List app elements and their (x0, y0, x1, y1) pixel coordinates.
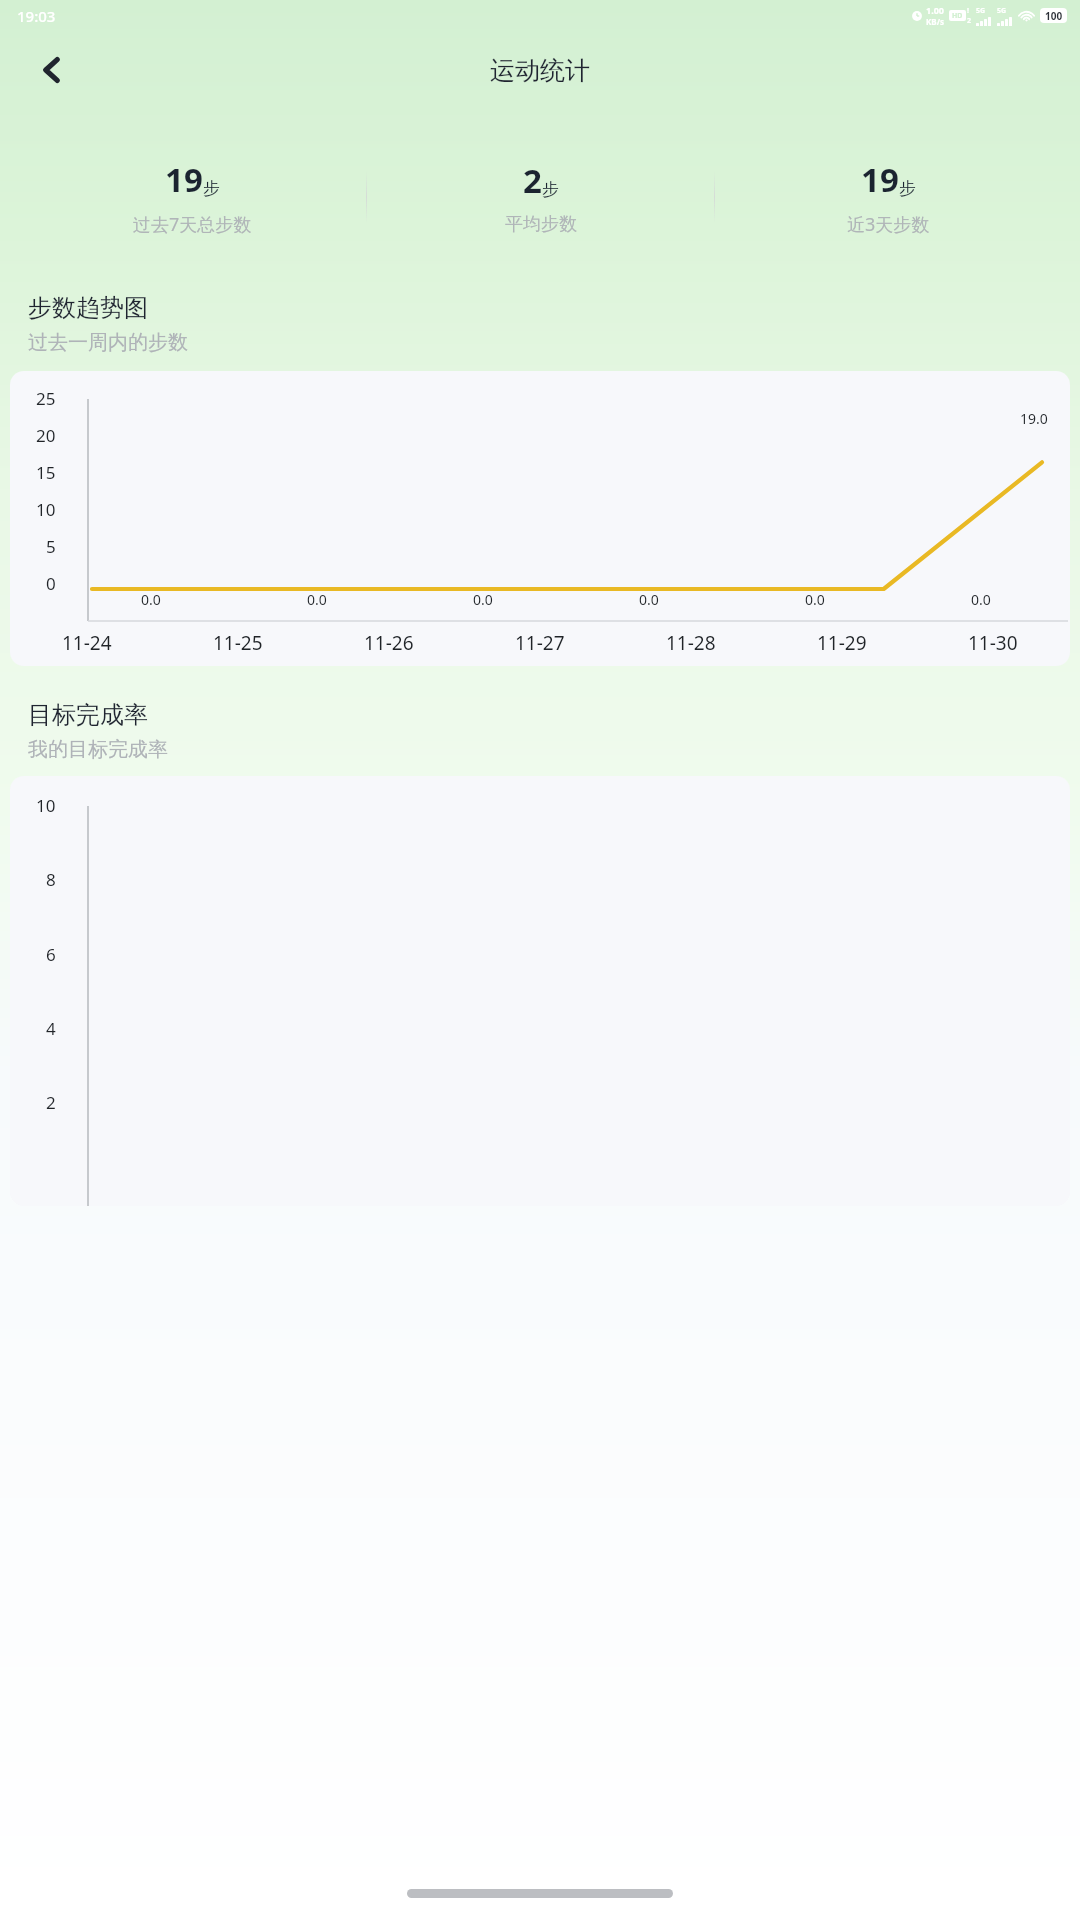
staticText: 11-28 (666, 630, 716, 656)
staticText: 1.00 (926, 4, 944, 16)
staticText: 19 (861, 157, 899, 202)
staticText: 步 (203, 178, 220, 199)
staticText: 0.0 (971, 590, 991, 609)
staticText: 2 (523, 158, 542, 203)
staticText: 15 (36, 461, 56, 484)
staticText: 0 (46, 572, 56, 595)
staticText: 0.0 (141, 590, 161, 609)
staticText: 2 (46, 1091, 56, 1114)
staticText: 6 (46, 943, 56, 966)
staticText: 11-27 (515, 630, 565, 656)
staticText: 近3天步数 (847, 212, 930, 237)
staticText: 19.0 (1020, 409, 1048, 428)
staticText: 5G (997, 6, 1007, 16)
staticText: KB/s (926, 16, 944, 27)
staticText: 平均步数 (505, 213, 577, 236)
button[interactable]: 19 (715, 157, 1062, 237)
staticText: 11-25 (213, 630, 263, 656)
button[interactable]: 10 (10, 776, 1070, 1206)
staticText: 5G (976, 6, 986, 16)
staticText: 10 (36, 498, 56, 521)
staticText: 5 (46, 535, 56, 558)
staticText: 19 (165, 157, 203, 202)
staticText: 20 (36, 424, 56, 447)
staticText: 25 (36, 387, 56, 410)
staticText: 过去一周内的步数 (28, 330, 188, 355)
button[interactable]: 19 (18, 157, 366, 237)
staticText: 过去7天总步数 (133, 212, 252, 237)
staticText: 11-24 (62, 630, 112, 656)
staticText: 0.0 (805, 590, 825, 609)
staticText: 目标完成率 (28, 700, 148, 730)
staticText: 0.0 (473, 590, 493, 609)
staticText: 步 (542, 179, 559, 200)
staticText: 0.0 (307, 590, 327, 609)
staticText: 0.0 (639, 590, 659, 609)
staticText: 步 (899, 178, 916, 199)
button[interactable]: Back (26, 44, 78, 96)
staticText: 11-30 (968, 630, 1018, 656)
staticText: 11-29 (817, 630, 867, 656)
staticText: 100 (1045, 9, 1063, 23)
staticText: 2 (967, 16, 972, 26)
staticText: HD (952, 11, 963, 21)
staticText: 4 (46, 1017, 56, 1040)
button[interactable]: 2 (367, 158, 714, 236)
staticText: 我的目标完成率 (28, 737, 168, 762)
staticText: ! (967, 6, 969, 16)
button[interactable]: 25 (10, 371, 1070, 666)
staticText: 8 (46, 868, 56, 891)
staticText: 10 (36, 794, 56, 817)
staticText: 步数趋势图 (28, 293, 148, 323)
staticText: 11-26 (364, 630, 414, 656)
staticText: 运动统计 (490, 55, 590, 86)
staticText: 19:03 (17, 6, 56, 26)
